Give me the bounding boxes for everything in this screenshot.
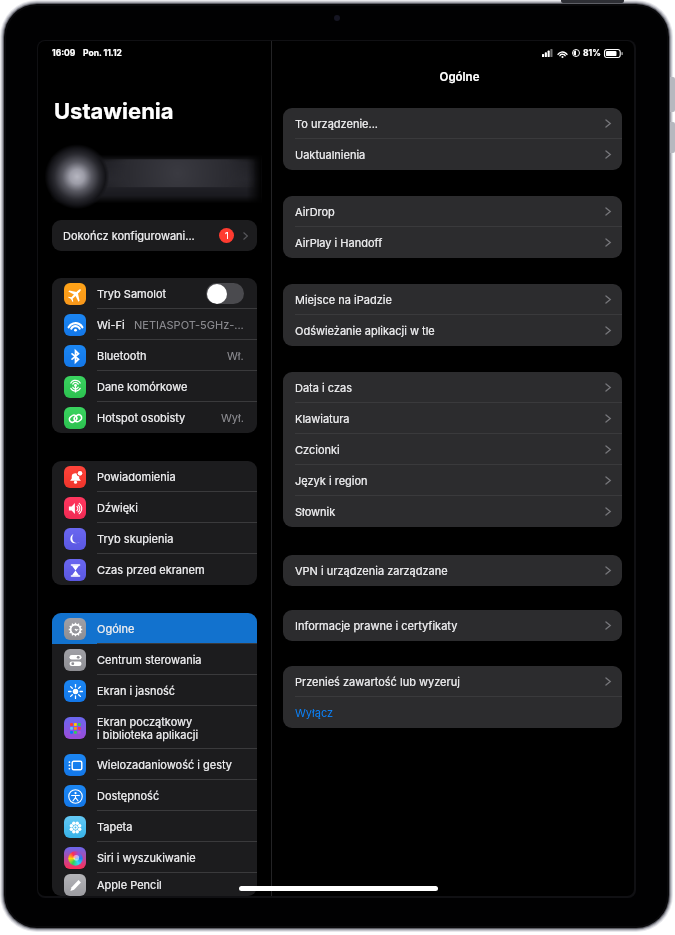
button[interactable]: Apple Pencil — [52, 873, 257, 896]
button[interactable]: Ogólne — [52, 613, 257, 644]
staticText: Ustawienia — [54, 98, 174, 125]
button[interactable]: Przenieś zawartość lub wyzeruj — [283, 666, 622, 697]
staticText: Pon. 11.12 — [83, 48, 122, 58]
staticText: Czcionki — [295, 443, 340, 456]
staticText: AirDrop — [295, 205, 335, 218]
button[interactable]: Ekran i jasność — [52, 675, 257, 706]
staticText: Siri i wyszukiwanie — [97, 851, 196, 864]
staticText: Tryb skupienia — [97, 532, 174, 545]
button[interactable]: Centrum sterowania — [52, 644, 257, 675]
button[interactable]: Wielozadaniowość i gesty — [52, 749, 257, 780]
staticText: VPN i urządzenia zarządzane — [295, 564, 448, 577]
button[interactable]: Czcionki — [283, 434, 622, 465]
staticText: 1 — [225, 230, 229, 241]
staticText: Powiadomienia — [97, 470, 176, 483]
button[interactable]: Powiadomienia — [52, 461, 257, 492]
button[interactable]: Wi-Fi — [52, 309, 257, 340]
button[interactable]: Informacje prawne i certyfikaty — [283, 610, 622, 641]
staticText: Uaktualnienia — [295, 148, 366, 161]
staticText: Informacje prawne i certyfikaty — [295, 619, 458, 632]
button[interactable]: Hotspot osobisty — [52, 402, 257, 433]
staticText: Odświeżanie aplikacji w tle — [295, 324, 435, 337]
button[interactable]: Tryb Samolot — [52, 278, 257, 309]
staticText: Wł. — [227, 349, 244, 362]
button[interactable]: Dokończ konfigurowani... — [52, 220, 257, 251]
button[interactable]: Uaktualnienia — [283, 139, 622, 170]
staticText: Data i czas — [295, 381, 352, 394]
button[interactable]: Czas przed ekranem — [52, 554, 257, 585]
staticText: Dźwięki — [97, 501, 138, 514]
staticText: Ogólne — [285, 70, 634, 84]
button[interactable]: AirDrop — [283, 196, 622, 227]
button[interactable]: Odświeżanie aplikacji w tle — [283, 315, 622, 346]
staticText: NETIASPOT-5GHz-... — [134, 318, 244, 331]
staticText: Ekran i jasność — [97, 684, 176, 697]
button[interactable]: Dane komórkowe — [52, 371, 257, 402]
staticText: Hotspot osobisty — [97, 411, 186, 424]
staticText: Dane komórkowe — [97, 380, 188, 393]
staticText: Centrum sterowania — [97, 653, 202, 666]
button[interactable]: Ekran początkowy — [52, 706, 257, 749]
staticText: Apple Pencil — [97, 878, 162, 891]
button[interactable]: Bluetooth — [52, 340, 257, 371]
button[interactable]: Klawiatura — [283, 403, 622, 434]
button[interactable]: Wyłącz — [283, 697, 622, 728]
staticText: Czas przed ekranem — [97, 563, 205, 576]
staticText: Słownik — [295, 505, 336, 518]
button[interactable]: Słownik — [283, 496, 622, 527]
button[interactable]: To urządzenie... — [283, 108, 622, 139]
staticText: Bluetooth — [97, 349, 147, 362]
staticText: Ogólne — [97, 622, 135, 635]
button[interactable]: Miejsce na iPadzie — [283, 284, 622, 315]
staticText: Przenieś zawartość lub wyzeruj — [295, 675, 460, 688]
staticText: Dokończ konfigurowani... — [63, 229, 195, 242]
button[interactable]: Język i region — [283, 465, 622, 496]
staticText: Wielozadaniowość i gesty — [97, 758, 233, 771]
staticText: 81% — [583, 48, 601, 58]
staticText: Wi-Fi — [97, 318, 125, 331]
staticText: Ekran początkowy — [97, 715, 193, 728]
staticText: Dostępność — [97, 789, 160, 802]
staticText: Klawiatura — [295, 412, 350, 425]
staticText: Wyłącz — [295, 706, 334, 719]
staticText: Wył. — [221, 411, 244, 424]
staticText: AirPlay i Handoff — [295, 236, 383, 249]
button[interactable]: Siri i wyszukiwanie — [52, 842, 257, 873]
button[interactable]: AirPlay i Handoff — [283, 227, 622, 258]
button[interactable]: VPN i urządzenia zarządzane — [283, 555, 622, 586]
button[interactable]: Tryb skupienia — [52, 523, 257, 554]
staticText: 16:09 — [52, 48, 76, 58]
staticText: Miejsce na iPadzie — [295, 293, 392, 306]
button[interactable]: Data i czas — [283, 372, 622, 403]
button[interactable]: Dźwięki — [52, 492, 257, 523]
staticText: i biblioteka aplikacji — [97, 728, 199, 741]
staticText: Tryb Samolot — [97, 287, 167, 300]
staticText: To urządzenie... — [295, 117, 378, 130]
button[interactable]: Dostępność — [52, 780, 257, 811]
staticText: Język i region — [295, 474, 368, 487]
staticText: Tapeta — [97, 820, 133, 833]
button[interactable]: Tryb Samolot toggle — [206, 283, 244, 304]
button[interactable]: Tapeta — [52, 811, 257, 842]
